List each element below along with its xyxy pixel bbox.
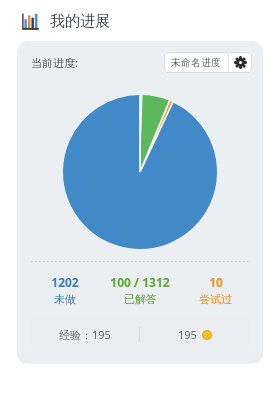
staticText: 经验：195 — [59, 327, 111, 342]
button[interactable]: 1202 — [31, 274, 98, 306]
button[interactable]: 未命名进度 — [164, 52, 252, 73]
staticText: 我的进展 — [50, 12, 110, 31]
button[interactable]: Settings — [235, 57, 246, 68]
staticText: 10 — [209, 274, 223, 290]
staticText: 未做 — [54, 292, 76, 306]
button[interactable]: 经验：195 — [30, 327, 250, 342]
staticText: 100 / 1312 — [110, 274, 170, 290]
staticText: 已解答 — [124, 292, 157, 306]
staticText: 195 — [178, 327, 197, 342]
staticText: 1202 — [51, 274, 79, 290]
button[interactable]: 10 — [182, 274, 249, 306]
staticText: 未命名进度 — [171, 56, 221, 69]
button[interactable]: 我的进展 — [21, 12, 277, 31]
button[interactable]: 100 / 1312 — [98, 274, 182, 306]
staticText: 当前进度: — [31, 55, 78, 70]
staticText: 尝试过 — [199, 292, 232, 306]
